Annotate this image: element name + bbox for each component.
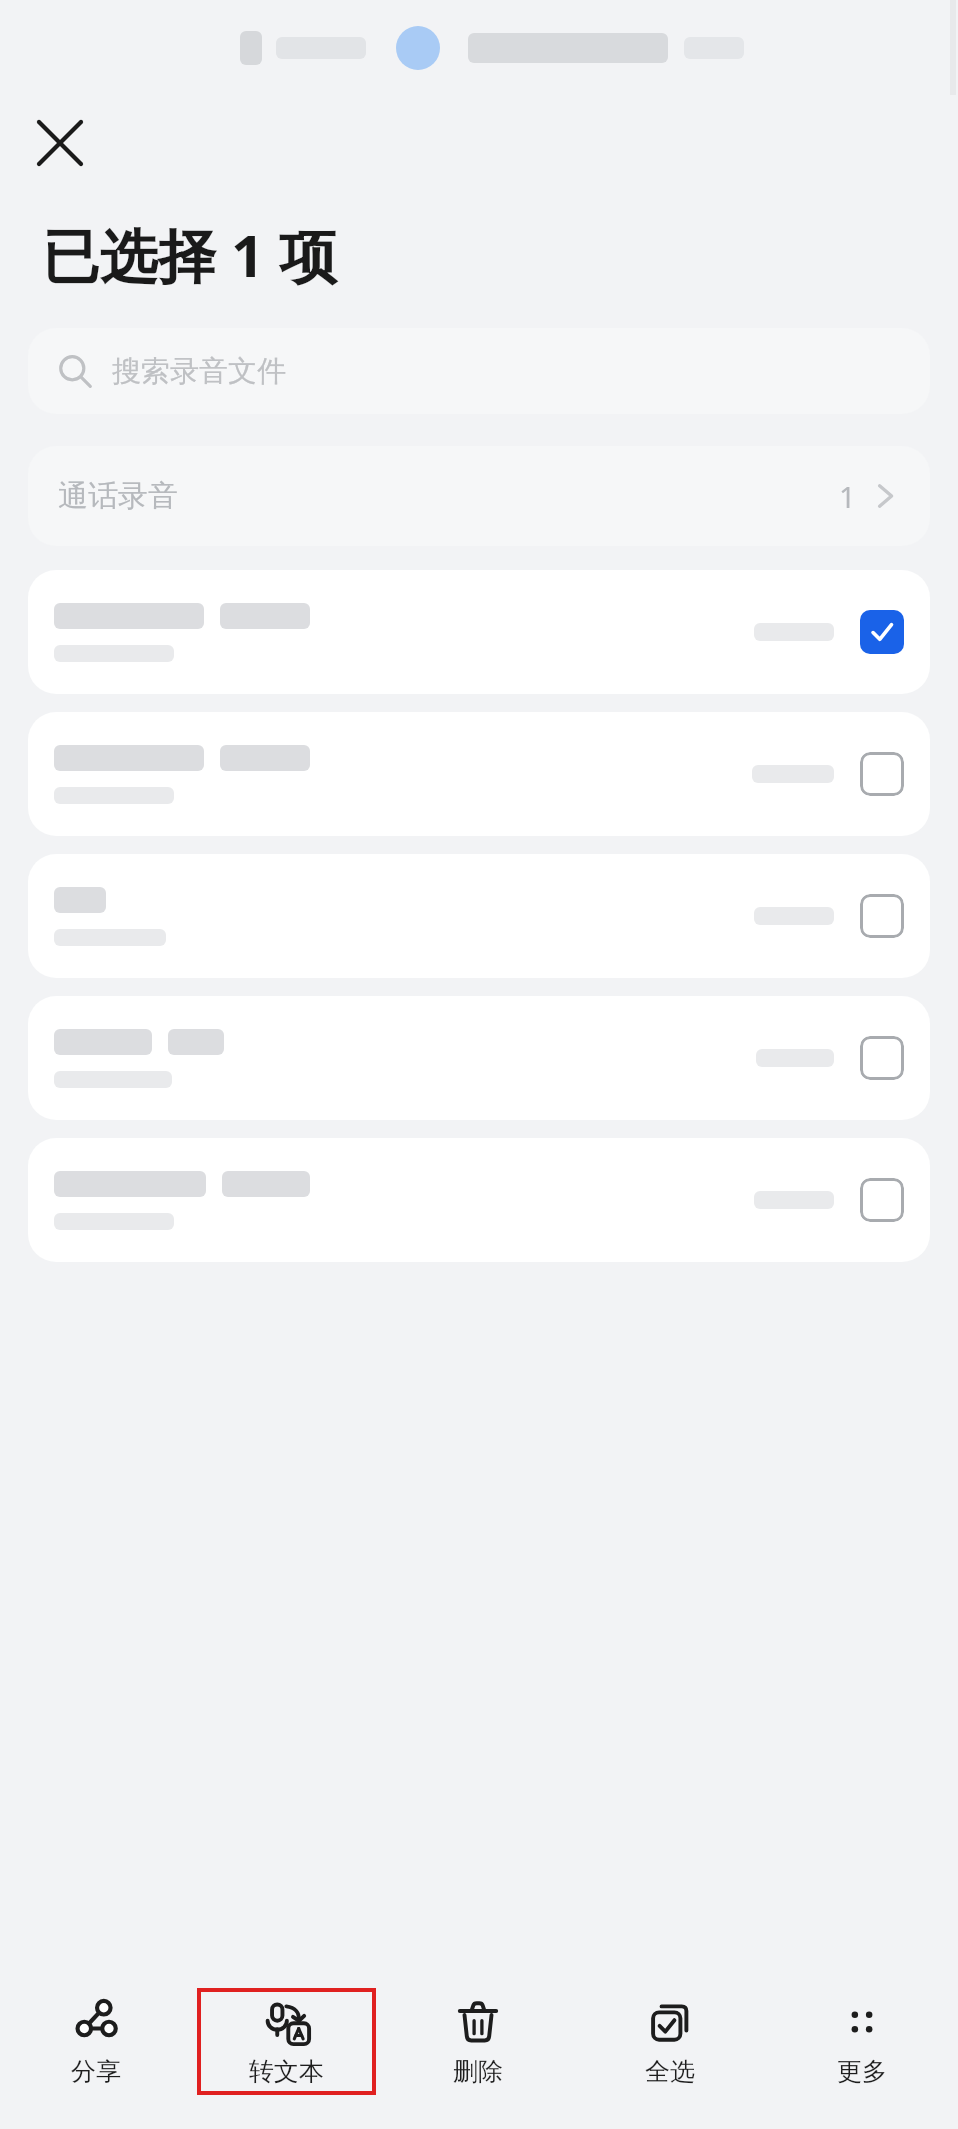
- button[interactable]: 未选中: [28, 996, 930, 1120]
- button[interactable]: 关闭: [22, 105, 98, 181]
- button[interactable]: 未选中: [28, 854, 930, 978]
- button[interactable]: 未选中: [28, 712, 930, 836]
- button[interactable]: 分享: [0, 1988, 191, 2095]
- button[interactable]: 更多: [766, 1988, 958, 2095]
- button[interactable]: 删除: [382, 1988, 574, 2095]
- staticText: 更多: [837, 2056, 887, 2087]
- staticText: 搜索录音文件: [112, 353, 286, 390]
- button[interactable]: 通话录音: [28, 446, 930, 546]
- button[interactable]: 未选中: [860, 894, 904, 938]
- staticText: 通话录音: [58, 477, 839, 515]
- staticText: 1: [839, 477, 856, 516]
- button[interactable]: 未选中: [860, 1178, 904, 1222]
- staticText: 已选择 1 项: [42, 215, 338, 294]
- button[interactable]: 转文本: [191, 1988, 382, 2095]
- button[interactable]: 未选中: [860, 1036, 904, 1080]
- staticText: 全选: [645, 2056, 695, 2087]
- staticText: 分享: [71, 2056, 121, 2087]
- button[interactable]: 未选中: [28, 1138, 930, 1262]
- staticText: 转文本: [249, 2056, 324, 2087]
- button[interactable]: 搜索录音文件: [28, 328, 930, 414]
- button[interactable]: 已选中: [28, 570, 930, 694]
- button[interactable]: 全选: [574, 1988, 766, 2095]
- staticText: 删除: [453, 2056, 503, 2087]
- button[interactable]: 已选中: [860, 610, 904, 654]
- button[interactable]: 未选中: [860, 752, 904, 796]
